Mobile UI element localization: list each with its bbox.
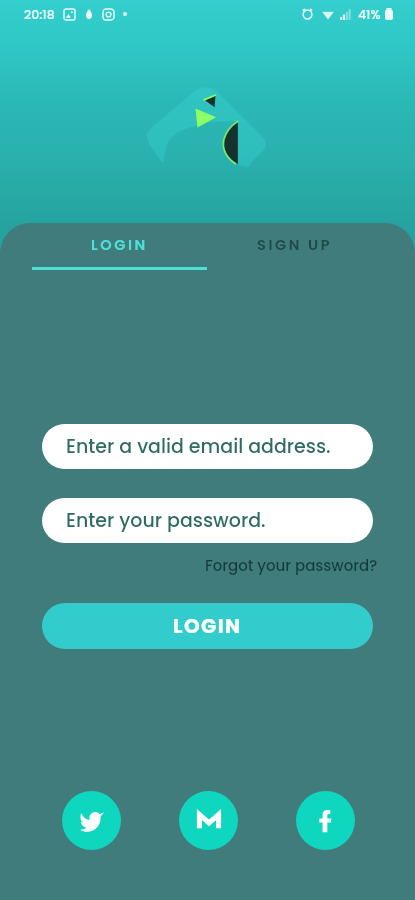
button[interactable]: LOGIN bbox=[42, 603, 373, 649]
button[interactable]: Enter a valid email address. bbox=[42, 424, 373, 469]
button[interactable]: Sign in with Facebook bbox=[296, 791, 355, 850]
button[interactable]: Sign in with Twitter bbox=[62, 791, 121, 850]
button[interactable]: SIGN UP bbox=[207, 223, 383, 270]
staticText: Enter a valid email address. bbox=[66, 433, 331, 460]
staticText: 20:18 bbox=[24, 6, 55, 23]
button[interactable]: Forgot your password? bbox=[205, 555, 378, 576]
staticText: 41% bbox=[358, 6, 381, 23]
staticText: SIGN UP bbox=[257, 235, 333, 255]
button[interactable]: Sign in with Gmail bbox=[179, 791, 238, 850]
staticText: LOGIN bbox=[173, 612, 242, 640]
staticText: Enter your password. bbox=[66, 507, 266, 534]
button[interactable]: Enter your password. bbox=[42, 498, 373, 543]
staticText: LOGIN bbox=[91, 235, 148, 255]
button[interactable]: LOGIN bbox=[32, 223, 207, 270]
